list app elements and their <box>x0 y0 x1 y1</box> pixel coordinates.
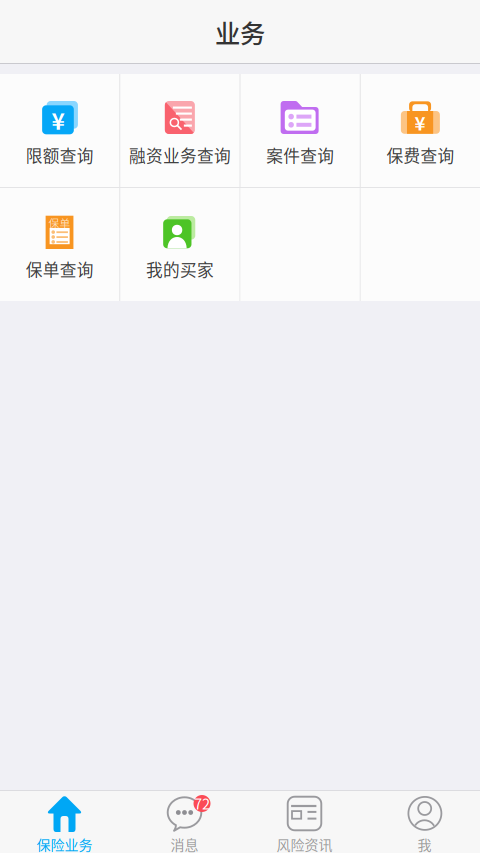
staticText: 保单 <box>48 215 70 230</box>
button[interactable]: 72 <box>120 790 240 853</box>
staticText: 限额查询 <box>26 143 94 167</box>
button[interactable]: 我的买家 <box>120 188 239 301</box>
button[interactable]: 融资业务查询 <box>120 74 239 187</box>
staticText: 我的买家 <box>146 257 214 281</box>
button[interactable]: ¥ <box>0 74 119 187</box>
button[interactable]: 保单 <box>0 188 119 301</box>
staticText: 72 <box>194 792 210 814</box>
staticText: 我 <box>417 834 431 853</box>
staticText: 风险资讯 <box>276 834 332 853</box>
staticText: 融资业务查询 <box>129 143 231 167</box>
staticText: ¥ <box>415 109 426 136</box>
button[interactable]: 我 <box>360 790 480 853</box>
staticText: 保险业务 <box>36 834 92 853</box>
button[interactable]: ¥ <box>361 74 480 187</box>
staticText: ¥ <box>51 103 64 136</box>
staticText: 保单查询 <box>26 257 94 281</box>
staticText: 保费查询 <box>386 143 454 167</box>
staticText: 案件查询 <box>266 143 334 167</box>
staticText: 消息 <box>170 834 198 853</box>
button[interactable]: 风险资讯 <box>240 790 360 853</box>
staticText: 业务 <box>215 14 265 50</box>
button[interactable]: 保险业务 <box>0 790 120 853</box>
button[interactable]: 案件查询 <box>240 74 360 187</box>
